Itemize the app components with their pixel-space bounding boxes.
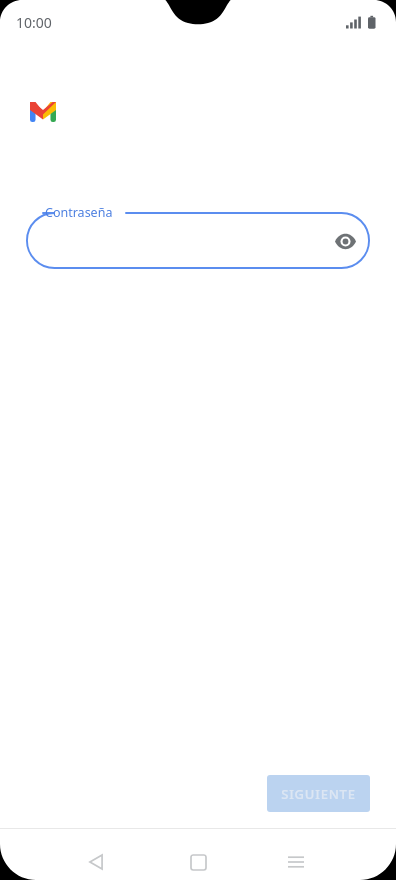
button[interactable]: Recientes: [272, 838, 320, 880]
button[interactable]: [26, 212, 370, 269]
button[interactable]: SIGUIENTE: [267, 775, 370, 812]
button[interactable]: Inicio: [174, 838, 222, 880]
staticText: Contraseña: [45, 204, 113, 221]
button[interactable]: Atrás: [72, 838, 120, 880]
button[interactable]: Mostrar contraseña: [328, 224, 362, 258]
staticText: SIGUIENTE: [281, 785, 356, 803]
staticText: 10:00: [16, 13, 52, 32]
